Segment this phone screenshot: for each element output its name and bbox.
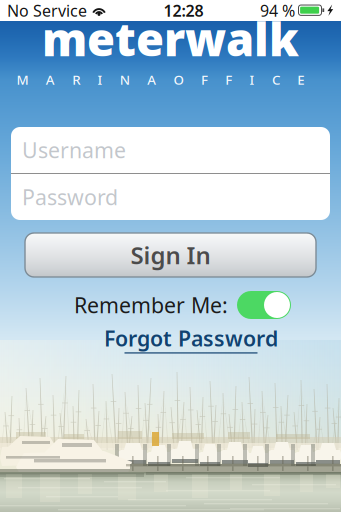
button[interactable]: Remember Me [237, 291, 291, 319]
button[interactable]: Sign In [25, 233, 316, 277]
staticText: Username [22, 136, 126, 164]
staticText: Remember Me: [74, 291, 228, 319]
staticText: M A R I N A O F F I C E [16, 71, 304, 88]
staticText: 94 % [260, 0, 295, 21]
button[interactable]: Password [11, 174, 330, 220]
staticText: 12:28 [163, 0, 203, 21]
staticText: meterwalk [42, 8, 299, 69]
button[interactable]: Username [11, 127, 330, 173]
staticText: No Service [7, 0, 87, 21]
button[interactable]: Forgot Password [104, 324, 278, 353]
staticText: Forgot Password [104, 324, 278, 352]
staticText: Password [22, 183, 118, 211]
staticText: Sign In [130, 239, 210, 271]
